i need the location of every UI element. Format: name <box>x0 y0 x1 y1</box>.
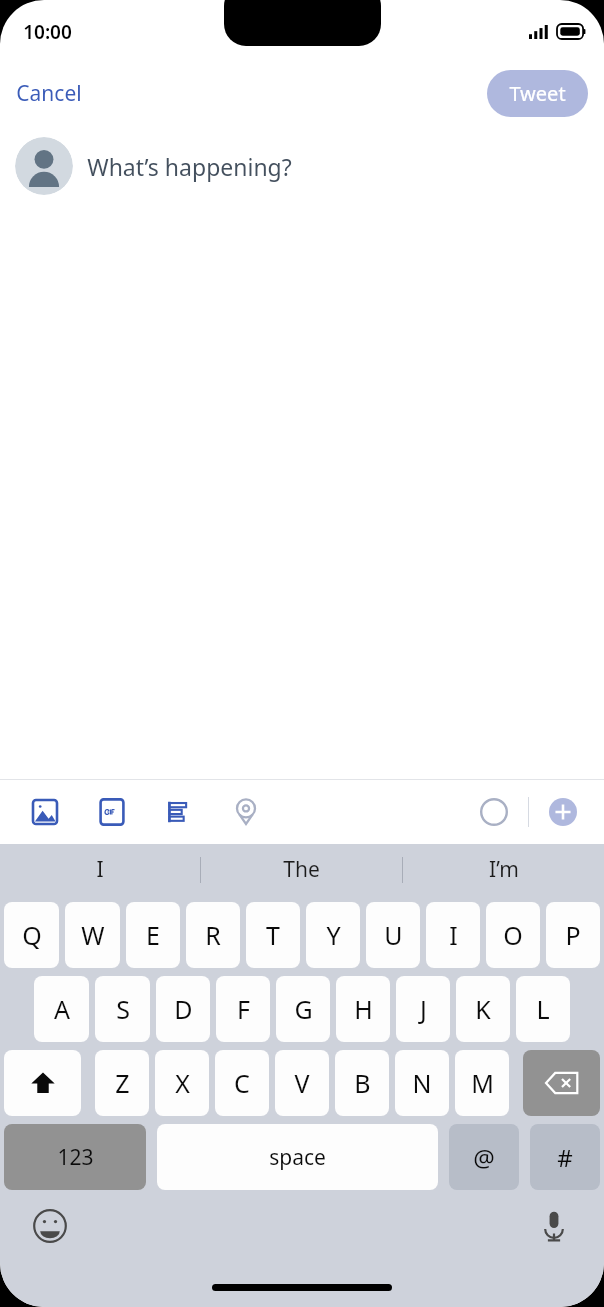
staticText: 10:00 <box>23 19 72 45</box>
button[interactable]: The <box>201 844 402 895</box>
staticText: S <box>116 992 130 1026</box>
button[interactable]: Emoji <box>26 1202 74 1250</box>
button[interactable]: U <box>366 902 420 968</box>
staticText: The <box>283 855 320 884</box>
staticText: D <box>174 992 193 1026</box>
button[interactable]: H <box>336 976 390 1042</box>
button[interactable]: Shift <box>4 1050 81 1116</box>
button[interactable]: Y <box>306 902 360 968</box>
staticText: space <box>269 1143 326 1172</box>
button[interactable]: K <box>456 976 510 1042</box>
button[interactable]: space <box>157 1124 438 1190</box>
button[interactable]: I <box>426 902 480 968</box>
staticText: H <box>354 992 373 1026</box>
staticText: R <box>205 918 221 952</box>
staticText: Tweet <box>509 80 566 107</box>
button[interactable]: Character count <box>474 792 514 832</box>
button[interactable]: S <box>95 976 150 1042</box>
staticText: P <box>565 918 581 952</box>
staticText: W <box>81 918 105 952</box>
button[interactable]: Profile <box>15 137 73 195</box>
button[interactable]: F <box>216 976 270 1042</box>
staticText: Q <box>22 918 42 952</box>
staticText: 123 <box>57 1143 94 1172</box>
staticText: Z <box>115 1066 130 1100</box>
button[interactable]: T <box>246 902 300 968</box>
button[interactable]: B <box>335 1050 389 1116</box>
button[interactable]: L <box>516 976 570 1042</box>
button[interactable]: Add poll <box>159 792 199 832</box>
button[interactable]: Add photo <box>25 792 65 832</box>
staticText: J <box>420 992 427 1026</box>
button[interactable]: M <box>455 1050 509 1116</box>
button[interactable]: A <box>34 976 89 1042</box>
staticText: # <box>557 1141 573 1174</box>
staticText: I <box>96 855 104 884</box>
button[interactable]: O <box>486 902 540 968</box>
button[interactable]: I’m <box>403 844 604 895</box>
staticText: @ <box>473 1141 495 1174</box>
staticText: X <box>175 1066 190 1100</box>
button[interactable]: W <box>65 902 120 968</box>
staticText: Y <box>326 918 341 952</box>
staticText: O <box>503 918 523 952</box>
staticText: A <box>54 992 70 1026</box>
button[interactable]: 123 <box>4 1124 146 1190</box>
staticText: N <box>412 1066 432 1100</box>
staticText: G <box>294 992 313 1026</box>
button[interactable]: @ <box>449 1124 519 1190</box>
button[interactable]: E <box>126 902 180 968</box>
button[interactable]: Add location <box>226 792 266 832</box>
button[interactable]: Q <box>4 902 59 968</box>
button[interactable]: J <box>396 976 450 1042</box>
button[interactable]: X <box>155 1050 209 1116</box>
button[interactable]: # <box>530 1124 600 1190</box>
button[interactable]: What’s happening? <box>87 137 604 195</box>
button[interactable]: V <box>275 1050 329 1116</box>
button[interactable]: Dictation <box>530 1202 578 1250</box>
button[interactable]: N <box>395 1050 449 1116</box>
button[interactable]: D <box>156 976 210 1042</box>
staticText: M <box>471 1066 494 1100</box>
staticText: F <box>237 992 250 1026</box>
staticText: I <box>449 918 458 952</box>
button[interactable]: Add GIF <box>92 792 132 832</box>
staticText: T <box>266 918 280 952</box>
button[interactable]: Backspace <box>523 1050 600 1116</box>
button[interactable]: C <box>215 1050 269 1116</box>
staticText: What’s happening? <box>87 151 292 182</box>
staticText: U <box>384 918 403 952</box>
staticText: V <box>294 1066 310 1100</box>
button[interactable]: Tweet <box>487 70 588 117</box>
button[interactable]: P <box>546 902 600 968</box>
button[interactable]: G <box>276 976 330 1042</box>
staticText: C <box>234 1066 250 1100</box>
staticText: B <box>354 1066 371 1100</box>
button[interactable]: Add tweet <box>543 792 583 832</box>
button[interactable]: Cancel <box>0 69 98 118</box>
staticText: K <box>475 992 491 1026</box>
button[interactable]: R <box>186 902 240 968</box>
staticText: I’m <box>489 855 519 884</box>
button[interactable]: Z <box>95 1050 149 1116</box>
staticText: L <box>536 992 550 1026</box>
button[interactable]: I <box>0 844 200 895</box>
staticText: E <box>146 918 160 952</box>
staticText: Cancel <box>16 79 82 108</box>
